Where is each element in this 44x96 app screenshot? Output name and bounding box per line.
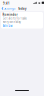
staticText: 9:41 (3, 2, 10, 5)
staticText: Edit List (3, 24, 13, 28)
staticText: every weekday (3, 20, 21, 24)
staticText: Get alerts for tasks (3, 17, 27, 20)
button[interactable]: Settings (1, 6, 15, 11)
staticText: Today (18, 7, 26, 10)
staticText: Reminder (3, 13, 18, 16)
staticText: Settings (4, 7, 15, 10)
button[interactable]: Edit List (2, 24, 13, 28)
